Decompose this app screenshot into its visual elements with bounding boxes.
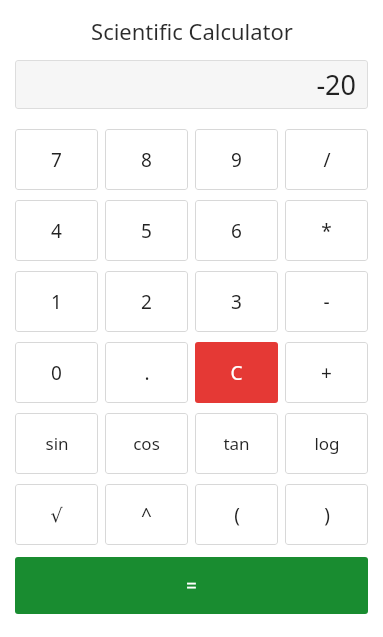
staticText: 3 bbox=[231, 289, 242, 315]
button[interactable]: . bbox=[105, 342, 188, 403]
staticText: 1 bbox=[51, 289, 62, 315]
button[interactable]: - bbox=[285, 271, 368, 332]
staticText: - bbox=[323, 289, 330, 315]
staticText: ( bbox=[234, 502, 240, 528]
button[interactable]: = bbox=[15, 557, 368, 614]
button[interactable]: 1 bbox=[15, 271, 98, 332]
button[interactable]: * bbox=[285, 200, 368, 261]
staticText: 2 bbox=[141, 289, 152, 315]
button[interactable]: C bbox=[195, 342, 278, 403]
staticText: C bbox=[230, 360, 243, 386]
button[interactable]: ( bbox=[195, 484, 278, 545]
button[interactable]: 3 bbox=[195, 271, 278, 332]
button[interactable]: 7 bbox=[15, 129, 98, 190]
staticText: Scientific Calculator bbox=[91, 16, 293, 46]
button[interactable]: 9 bbox=[195, 129, 278, 190]
staticText: 8 bbox=[141, 147, 152, 173]
button[interactable]: ^ bbox=[105, 484, 188, 545]
staticText: -20 bbox=[316, 66, 356, 103]
button[interactable]: 5 bbox=[105, 200, 188, 261]
button[interactable]: 8 bbox=[105, 129, 188, 190]
staticText: log bbox=[314, 432, 340, 455]
staticText: * bbox=[321, 218, 332, 244]
button[interactable]: cos bbox=[105, 413, 188, 474]
button[interactable]: 2 bbox=[105, 271, 188, 332]
button[interactable]: √ bbox=[15, 484, 98, 545]
staticText: 0 bbox=[51, 360, 62, 386]
button[interactable]: tan bbox=[195, 413, 278, 474]
button[interactable]: 0 bbox=[15, 342, 98, 403]
button[interactable]: 4 bbox=[15, 200, 98, 261]
staticText: 9 bbox=[231, 147, 242, 173]
button[interactable]: 6 bbox=[195, 200, 278, 261]
staticText: tan bbox=[223, 432, 250, 455]
staticText: 4 bbox=[51, 218, 62, 244]
staticText: = bbox=[186, 573, 197, 599]
staticText: 6 bbox=[231, 218, 242, 244]
button[interactable]: / bbox=[285, 129, 368, 190]
staticText: cos bbox=[133, 432, 160, 455]
staticText: 7 bbox=[51, 147, 62, 173]
button[interactable]: + bbox=[285, 342, 368, 403]
staticText: √ bbox=[50, 504, 63, 526]
staticText: . bbox=[144, 360, 150, 386]
staticText: + bbox=[321, 360, 332, 386]
button[interactable]: ) bbox=[285, 484, 368, 545]
staticText: ) bbox=[324, 502, 330, 528]
staticText: 5 bbox=[141, 218, 152, 244]
staticText: ^ bbox=[141, 502, 152, 528]
staticText: sin bbox=[45, 432, 69, 455]
staticText: / bbox=[323, 147, 331, 173]
button[interactable]: sin bbox=[15, 413, 98, 474]
button[interactable]: log bbox=[285, 413, 368, 474]
